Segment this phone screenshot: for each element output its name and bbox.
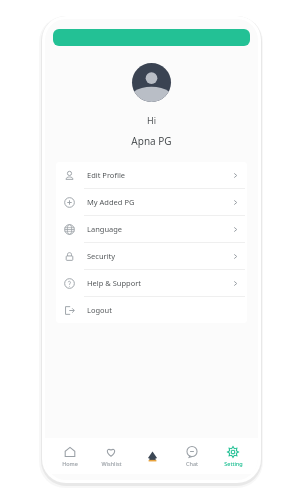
staticText: Help & Support [87, 278, 142, 288]
button[interactable]: Logout [56, 297, 247, 323]
button[interactable]: Chat [172, 446, 212, 467]
staticText: My Added PG [87, 197, 135, 207]
button[interactable]: PG Listings [132, 450, 172, 463]
button[interactable]: Edit Profile [56, 162, 247, 188]
staticText: Setting [224, 460, 243, 467]
button[interactable]: My Added PG [56, 189, 247, 215]
staticText: Language [87, 224, 123, 234]
staticText: Wishlist [101, 460, 122, 467]
button[interactable]: Security [56, 243, 247, 269]
button[interactable]: Setting [213, 446, 253, 467]
staticText: Edit Profile [87, 170, 126, 180]
button[interactable]: Help & Support [56, 270, 247, 296]
staticText: Apna PG [45, 134, 258, 148]
staticText: Security [87, 251, 116, 261]
staticText: Chat [186, 460, 198, 467]
staticText: Hi [45, 114, 258, 126]
button[interactable]: Wishlist [91, 446, 131, 467]
button[interactable]: Home [50, 446, 90, 467]
button[interactable]: Language [56, 216, 247, 242]
staticText: Home [62, 460, 78, 467]
staticText: Logout [87, 305, 112, 315]
